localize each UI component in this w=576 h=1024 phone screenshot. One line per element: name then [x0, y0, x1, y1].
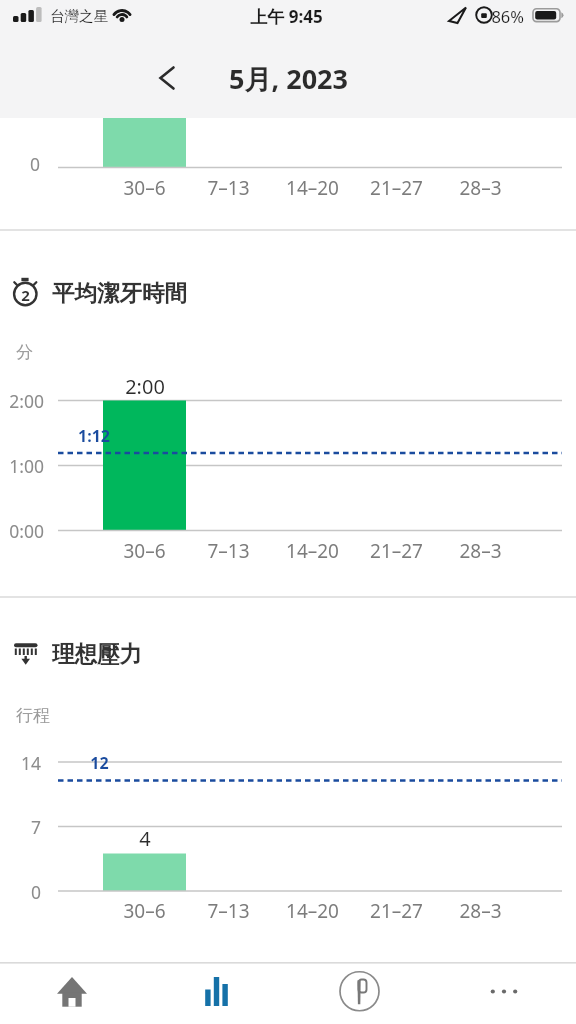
button[interactable]: [145, 56, 189, 100]
staticText: 2:00: [125, 373, 165, 400]
staticText: 行程: [16, 705, 50, 726]
staticText: 平均潔牙時間: [52, 279, 187, 307]
staticText: 21–27: [370, 175, 423, 201]
staticText: 14: [20, 751, 41, 775]
staticText: 86%: [491, 5, 524, 27]
staticText: 台灣之星: [50, 7, 108, 25]
staticText: 理想壓力: [52, 640, 142, 668]
staticText: 12: [90, 752, 109, 774]
staticText: 30–6: [123, 898, 166, 924]
staticText: 5月, 2023: [229, 60, 348, 97]
staticText: 14–20: [286, 898, 339, 924]
staticText: 21–27: [370, 898, 423, 924]
staticText: 30–6: [123, 538, 166, 564]
staticText: 2: [21, 285, 30, 305]
staticText: 30–6: [123, 175, 166, 201]
staticText: 4: [139, 825, 151, 852]
button[interactable]: [0, 964, 144, 1024]
staticText: 0:00: [9, 519, 44, 543]
staticText: 1:00: [9, 454, 44, 478]
staticText: 28–3: [459, 898, 502, 924]
staticText: 0: [30, 880, 41, 904]
staticText: 2:00: [9, 389, 44, 413]
button[interactable]: [432, 964, 576, 1024]
staticText: 7–13: [207, 898, 250, 924]
staticText: 21–27: [370, 538, 423, 564]
staticText: 上午 9:45: [250, 5, 323, 28]
button[interactable]: [144, 964, 288, 1024]
staticText: 1:12: [78, 425, 110, 447]
staticText: 7–13: [207, 538, 250, 564]
staticText: 7: [30, 815, 41, 839]
staticText: 14–20: [286, 175, 339, 201]
staticText: 14–20: [286, 538, 339, 564]
button[interactable]: [288, 964, 432, 1024]
staticText: 28–3: [459, 175, 502, 201]
staticText: 28–3: [459, 538, 502, 564]
staticText: 0: [29, 152, 40, 176]
staticText: 7–13: [207, 175, 250, 201]
staticText: 分: [16, 342, 33, 363]
